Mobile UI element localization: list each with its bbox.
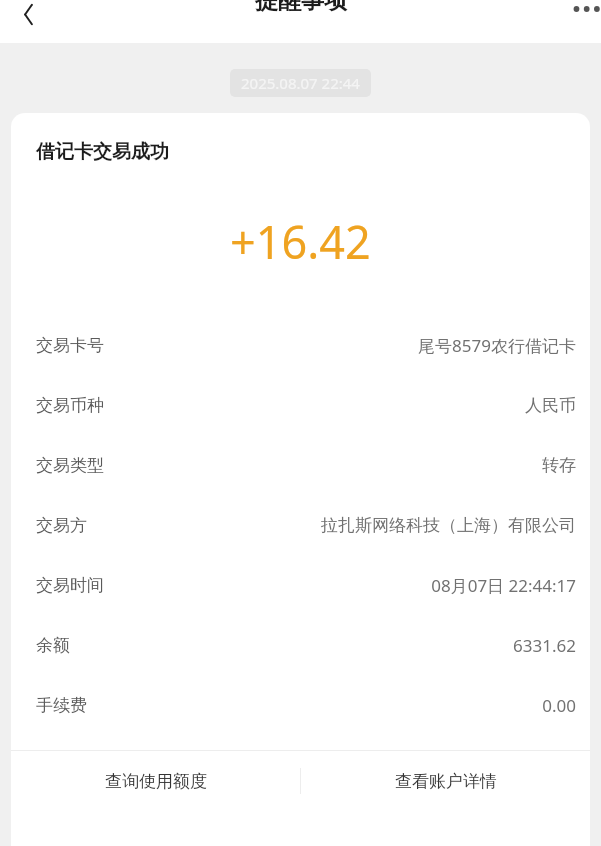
button[interactable]: 手续费 [11,675,590,735]
staticText: 转存 [542,455,576,476]
staticText: +16.42 [230,211,371,272]
button[interactable]: 交易类型 [11,435,590,495]
staticText: 查看账户详情 [395,771,497,792]
button[interactable]: 查询使用额度 [11,751,300,811]
button[interactable]: 交易时间 [11,555,590,615]
button[interactable]: 交易币种 [11,375,590,435]
staticText: 6331.62 [513,634,576,657]
staticText: 交易币种 [36,395,104,416]
staticText: 借记卡交易成功 [36,140,169,164]
staticText: 交易类型 [36,455,104,476]
staticText: 余额 [36,635,70,656]
button[interactable]: 查看账户详情 [301,751,590,811]
staticText: 查询使用额度 [105,771,207,792]
staticText: 提醒事项 [255,0,347,15]
button[interactable]: More options [565,0,601,30]
staticText: 交易卡号 [36,335,104,356]
staticText: 0.00 [542,694,576,717]
button[interactable]: Back [8,0,48,34]
staticText: 交易方 [36,515,87,536]
staticText: 尾号8579农行借记卡 [418,334,576,357]
staticText: 2025.08.07 22:44 [241,73,360,93]
button[interactable]: 余额 [11,615,590,675]
button[interactable]: 交易卡号 [11,315,590,375]
button[interactable]: 交易方 [11,495,590,555]
staticText: 08月07日 22:44:17 [431,574,576,597]
staticText: 交易时间 [36,575,104,596]
staticText: 人民币 [525,395,576,416]
staticText: 手续费 [36,695,87,716]
staticText: 拉扎斯网络科技（上海）有限公司 [321,515,576,536]
